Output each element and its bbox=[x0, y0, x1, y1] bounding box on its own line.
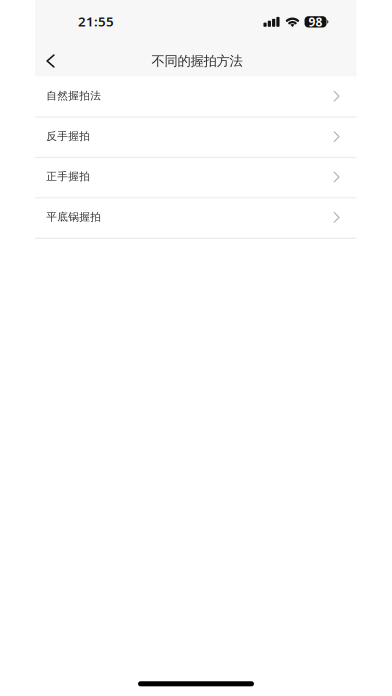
button[interactable]: 自然握拍法 bbox=[35, 77, 356, 116]
staticText: 21:55 bbox=[78, 12, 114, 30]
staticText: 反手握拍 bbox=[46, 129, 90, 143]
staticText: 自然握拍法 bbox=[46, 89, 101, 102]
staticText: 平底锅握拍 bbox=[46, 210, 101, 223]
button[interactable]: Back bbox=[35, 44, 66, 77]
button[interactable]: 反手握拍 bbox=[35, 118, 356, 157]
staticText: 不同的握拍方法 bbox=[151, 53, 242, 69]
button[interactable]: 正手握拍 bbox=[35, 158, 356, 197]
button[interactable]: 平底锅握拍 bbox=[35, 199, 356, 238]
staticText: 正手握拍 bbox=[46, 170, 90, 183]
staticText: 98 bbox=[309, 14, 323, 30]
